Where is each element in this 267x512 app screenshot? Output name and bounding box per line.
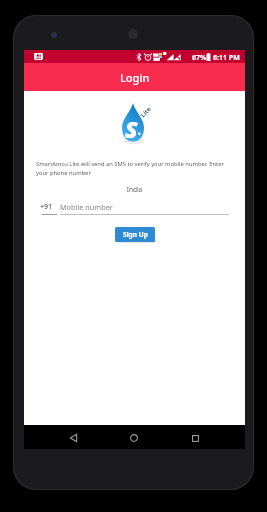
button[interactable]: Sign Up [115,227,155,242]
staticText: Mobile number [60,202,113,212]
button[interactable]: Recents [184,427,206,449]
staticText: Login [120,70,150,85]
button[interactable]: Back [62,427,84,449]
staticText: Sign Up [123,230,148,239]
staticText: 6:11 PM [213,53,240,63]
staticText: 67% [192,53,207,63]
button[interactable]: Home [123,427,145,449]
staticText: +91 [40,202,53,212]
staticText: India [24,185,245,194]
staticText: Lite [139,105,153,119]
staticText: S [125,113,138,144]
staticText: SmartAmcu Lite will send an SMS to verif… [36,160,233,176]
